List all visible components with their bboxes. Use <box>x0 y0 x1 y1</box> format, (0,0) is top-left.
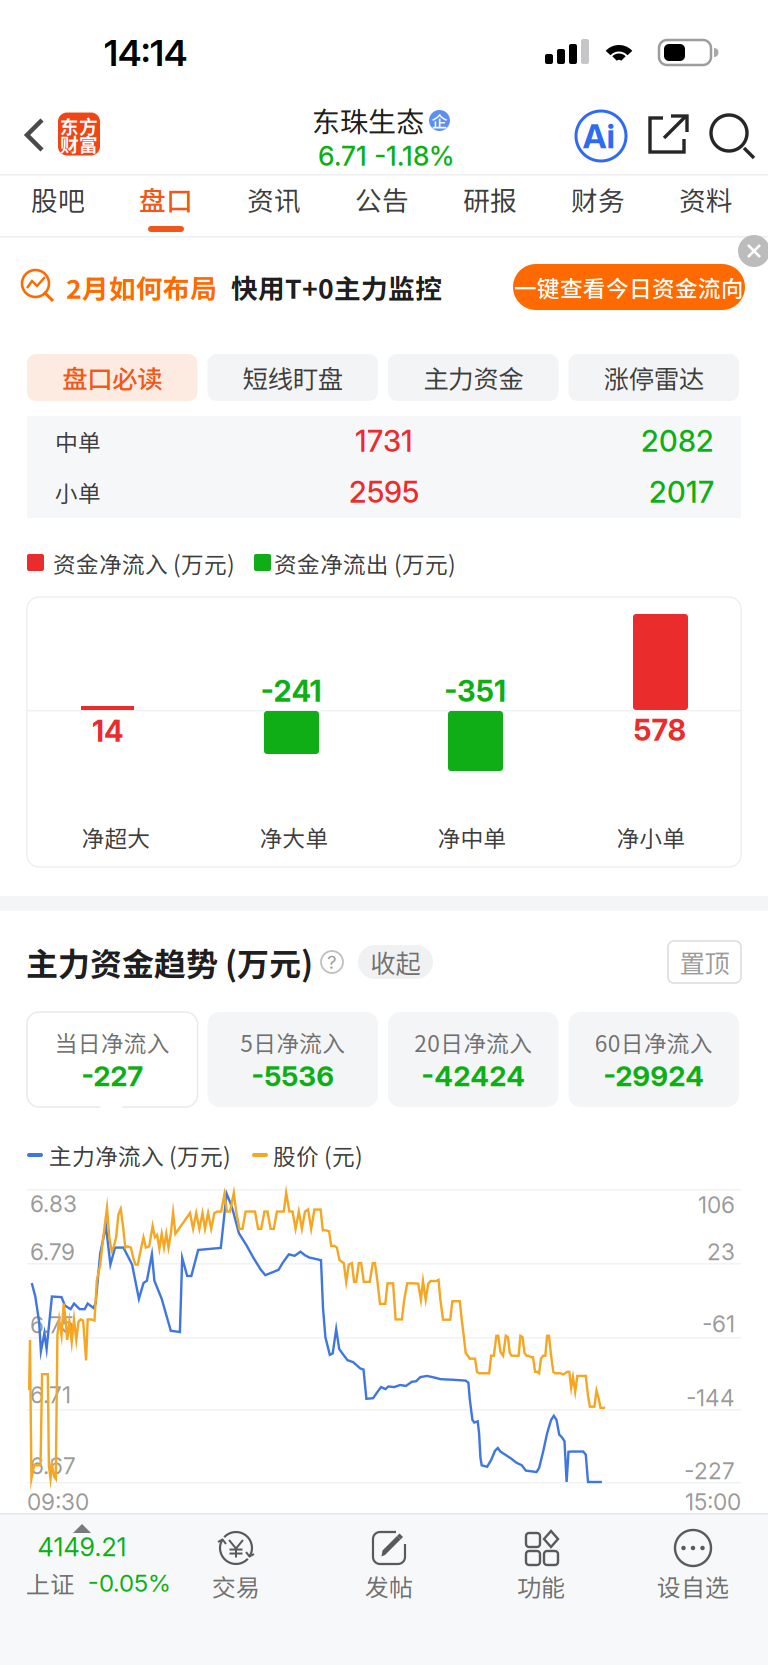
staticText: 企 <box>431 109 447 132</box>
staticText: 1731 <box>355 423 413 459</box>
staticText: 2082 <box>641 423 714 459</box>
staticText: -227 <box>684 1457 735 1485</box>
staticText: 小单 <box>55 476 101 508</box>
button[interactable]: 功能 <box>471 1518 611 1610</box>
staticText: 净小单 <box>616 821 685 853</box>
button[interactable]: 研报 <box>436 177 544 235</box>
staticText: 4149.21 <box>37 1532 126 1562</box>
button[interactable]: AI 助手 <box>576 111 626 161</box>
button[interactable]: 说明 <box>321 951 343 973</box>
staticText: 20日净流入 <box>414 1026 532 1058</box>
staticText: 15:00 <box>685 1488 741 1516</box>
staticText: -61 <box>702 1310 735 1338</box>
staticText: 财务 <box>571 180 625 218</box>
button[interactable]: 财务 <box>544 177 652 235</box>
staticText: 资讯 <box>247 180 301 218</box>
button[interactable]: 东方财富 <box>58 112 100 155</box>
button[interactable]: 分享 <box>641 107 699 165</box>
button[interactable]: 关闭 <box>738 235 768 267</box>
button[interactable]: 返回 <box>23 117 47 153</box>
staticText: 净超大 <box>81 821 150 853</box>
staticText: 资金净流出 (万元) <box>274 547 456 579</box>
staticText: -351 <box>444 673 506 709</box>
staticText: 股吧 <box>31 180 85 218</box>
staticText: 5日净流入 <box>240 1026 345 1058</box>
staticText: 东方 <box>60 112 98 139</box>
staticText: -29924 <box>603 1059 704 1093</box>
staticText: 106 <box>698 1191 735 1219</box>
button[interactable]: 收起 <box>358 945 433 979</box>
staticText: -227 <box>81 1059 143 1093</box>
staticText: 2017 <box>649 474 714 510</box>
staticText: 6.71 <box>318 140 367 172</box>
staticText: Ai <box>582 116 615 156</box>
staticText: -0.05% <box>88 1568 171 1597</box>
staticText: 6.75 <box>30 1311 74 1339</box>
button[interactable]: 短线盯盘 <box>207 354 378 401</box>
staticText: 交易 <box>212 1569 260 1603</box>
button[interactable]: 5日净流入 <box>207 1012 378 1107</box>
staticText: 设自选 <box>657 1569 729 1603</box>
staticText: 主力资金趋势 (万元) <box>26 939 313 985</box>
button[interactable]: 当日净流入 <box>27 1012 197 1107</box>
staticText: -1.18% <box>374 140 454 172</box>
staticText: 中单 <box>55 425 101 457</box>
button[interactable]: 涨停雷达 <box>568 354 739 401</box>
button[interactable]: 搜索 <box>703 107 761 165</box>
staticText: -241 <box>260 673 321 709</box>
staticText: 研报 <box>463 180 517 218</box>
staticText: 14 <box>92 713 124 749</box>
staticText: 上证 <box>26 1566 74 1600</box>
staticText: 60日净流入 <box>595 1026 713 1058</box>
staticText: 6.83 <box>30 1190 77 1218</box>
staticText: 净大单 <box>259 821 328 853</box>
staticText: 盘口必读 <box>62 359 162 396</box>
button[interactable]: 20日净流入 <box>388 1012 558 1107</box>
staticText: 资金净流入 (万元) <box>53 547 235 579</box>
staticText: 2595 <box>349 474 419 510</box>
staticText: 6.79 <box>30 1238 75 1266</box>
button[interactable]: 60日净流入 <box>568 1012 739 1107</box>
staticText: -5536 <box>251 1059 334 1093</box>
staticText: 578 <box>633 712 686 748</box>
staticText: 置顶 <box>679 944 729 980</box>
staticText: 东珠生态 <box>312 100 424 140</box>
staticText: 当日净流入 <box>55 1026 170 1058</box>
staticText: 功能 <box>517 1569 565 1603</box>
button[interactable]: 股吧 <box>4 177 112 235</box>
button[interactable]: 资料 <box>652 177 760 235</box>
staticText: 净中单 <box>437 821 506 853</box>
button[interactable]: 公告 <box>328 177 436 235</box>
staticText: -42424 <box>421 1059 525 1093</box>
button[interactable]: 主力资金 <box>388 354 558 401</box>
staticText: 涨停雷达 <box>604 359 704 396</box>
staticText: 主力净流入 (万元) <box>49 1139 231 1171</box>
button[interactable]: 设自选 <box>623 1518 763 1610</box>
staticText: 公告 <box>355 180 409 218</box>
button[interactable]: 一键查看今日资金流向 <box>513 264 745 310</box>
button[interactable]: 盘口必读 <box>27 354 197 401</box>
staticText: 资料 <box>679 180 733 218</box>
staticText: 09:30 <box>27 1488 89 1516</box>
staticText: ? <box>327 951 337 973</box>
button[interactable]: 发帖 <box>319 1518 459 1610</box>
staticText: 2月如何布局 <box>66 268 217 306</box>
staticText: 发帖 <box>365 1569 413 1603</box>
staticText: 股价 (元) <box>273 1139 363 1171</box>
button[interactable]: 交易 <box>166 1518 306 1610</box>
button[interactable]: 上证指数 <box>0 1513 164 1613</box>
staticText: 短线盯盘 <box>243 359 343 396</box>
staticText: 主力资金 <box>423 359 523 396</box>
staticText: -144 <box>686 1384 735 1412</box>
button[interactable]: 资讯 <box>220 177 328 235</box>
staticText: 14:14 <box>104 31 187 75</box>
staticText: 财富 <box>60 130 98 157</box>
staticText: 收起 <box>370 944 420 980</box>
button[interactable]: 置顶 <box>668 941 741 983</box>
staticText: 快用T+0主力监控 <box>231 268 442 306</box>
staticText: 盘口 <box>139 180 193 218</box>
staticText: 一键查看今日资金流向 <box>514 271 744 303</box>
staticText: 6.71 <box>30 1381 71 1409</box>
staticText: 6.67 <box>30 1452 76 1480</box>
button[interactable]: 盘口 <box>112 177 220 235</box>
